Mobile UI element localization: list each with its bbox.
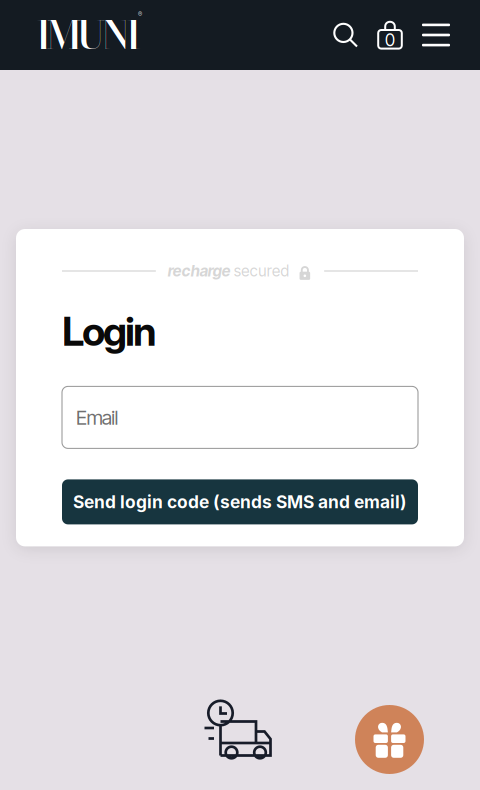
staticText: secured — [234, 262, 289, 280]
button[interactable]: Cart, 0 items — [372, 14, 408, 56]
staticText: IMUNI — [36, 5, 141, 64]
staticText: 0 — [385, 29, 395, 50]
staticText: Login — [62, 307, 157, 355]
button[interactable]: Search — [328, 14, 363, 55]
button[interactable]: Menu — [417, 16, 455, 54]
staticText: Email — [76, 405, 119, 429]
button[interactable]: IMUNI home — [0, 0, 145, 72]
staticText: recharge — [168, 262, 231, 280]
staticText: Send login code (sends SMS and email) — [73, 491, 407, 512]
staticText: ® — [138, 10, 142, 19]
button[interactable]: Rewards — [355, 705, 424, 774]
button[interactable]: Send login code (sends SMS and email) — [62, 479, 418, 524]
button[interactable]: Fast delivery — [203, 699, 272, 759]
